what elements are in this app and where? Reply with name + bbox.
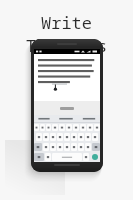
button[interactable]: Suggestion 1 xyxy=(34,115,54,122)
button[interactable]: Comma xyxy=(45,153,51,161)
button[interactable]: Backspace xyxy=(92,143,100,151)
button[interactable]: Send xyxy=(60,107,74,110)
button[interactable] xyxy=(36,133,42,141)
button[interactable]: Send message xyxy=(90,153,100,161)
button[interactable]: Suggestion 2 xyxy=(54,115,78,122)
button[interactable] xyxy=(52,124,58,131)
button[interactable]: Symbols xyxy=(34,153,44,161)
button[interactable] xyxy=(73,124,79,131)
button[interactable] xyxy=(87,124,93,131)
button[interactable] xyxy=(78,133,84,141)
button[interactable] xyxy=(40,124,45,131)
button[interactable] xyxy=(78,143,84,151)
button[interactable] xyxy=(66,124,72,131)
button[interactable] xyxy=(71,133,77,141)
button[interactable] xyxy=(50,133,56,141)
button[interactable] xyxy=(94,124,100,131)
button[interactable] xyxy=(43,133,49,141)
button[interactable] xyxy=(71,143,77,151)
button[interactable] xyxy=(64,143,70,151)
button[interactable] xyxy=(34,124,39,131)
button[interactable] xyxy=(46,124,51,131)
button[interactable]: Period xyxy=(83,153,89,161)
button[interactable] xyxy=(85,133,91,141)
button[interactable] xyxy=(57,133,63,141)
button[interactable] xyxy=(80,124,86,131)
button[interactable] xyxy=(64,133,70,141)
button[interactable]: Suggestion 3 xyxy=(78,115,100,122)
button[interactable] xyxy=(92,133,98,141)
button[interactable] xyxy=(85,143,91,151)
button[interactable] xyxy=(57,143,63,151)
staticText: Write Thoughts xyxy=(0,11,133,57)
button[interactable] xyxy=(50,143,56,151)
button[interactable]: Shift xyxy=(34,143,42,151)
button[interactable] xyxy=(43,143,49,151)
button[interactable] xyxy=(59,124,65,131)
button[interactable]: Space xyxy=(52,153,82,161)
button[interactable] xyxy=(34,54,100,101)
